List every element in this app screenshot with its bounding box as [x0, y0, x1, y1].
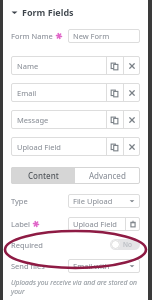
staticText: Upload Field [17, 142, 106, 152]
staticText: New Form [73, 31, 110, 41]
other: Remove [128, 62, 136, 70]
button[interactable]: Remove [124, 83, 140, 102]
button[interactable]: Remove [124, 137, 140, 156]
staticText: Name [17, 61, 106, 71]
button[interactable]: Required toggle, off [110, 239, 140, 250]
staticText: Email [17, 88, 106, 98]
other: Delete [129, 220, 137, 228]
button[interactable]: Name [11, 56, 140, 75]
button[interactable]: Remove [124, 56, 140, 75]
staticText: Email with attachm [73, 261, 129, 271]
button[interactable]: Duplicate [107, 137, 123, 156]
other: Duplicate [111, 89, 119, 97]
button[interactable]: Form Fields [3, 6, 148, 18]
staticText: File Upload [73, 196, 129, 206]
button[interactable]: Duplicate [107, 56, 123, 75]
staticText: Required [11, 240, 43, 250]
button[interactable]: Duplicate [107, 110, 123, 129]
button[interactable]: File Upload [68, 194, 140, 208]
button[interactable]: Email [11, 83, 140, 102]
button[interactable]: Email with attachm [68, 259, 140, 273]
staticText: Content [28, 170, 59, 181]
button[interactable]: New Form [68, 29, 140, 43]
button[interactable]: Delete [126, 217, 140, 231]
button[interactable]: Duplicate [107, 83, 123, 102]
staticText: Form Name [11, 31, 53, 41]
staticText: Form Fields [22, 6, 74, 18]
staticText: Message [17, 115, 106, 125]
other: Duplicate [111, 116, 119, 124]
staticText: Advanced [89, 170, 126, 181]
button[interactable]: Message [11, 110, 140, 129]
button[interactable]: Upload Field [11, 137, 140, 156]
button[interactable]: Remove [124, 110, 140, 129]
staticText: No [123, 240, 132, 249]
staticText: Type [11, 196, 28, 206]
other: Remove [128, 143, 136, 151]
staticText: Upload Field [73, 219, 117, 229]
staticText: Send files [11, 261, 45, 271]
staticText: Label [11, 219, 30, 229]
other: Duplicate [111, 62, 119, 70]
button[interactable]: Advanced [75, 167, 140, 184]
button[interactable]: Content [11, 167, 75, 184]
button[interactable]: Upload Field [68, 217, 125, 231]
staticText: Uploads you receive via and are stored o… [11, 278, 140, 296]
other: Duplicate [111, 143, 119, 151]
other: Remove [128, 116, 136, 124]
other: Remove [128, 89, 136, 97]
